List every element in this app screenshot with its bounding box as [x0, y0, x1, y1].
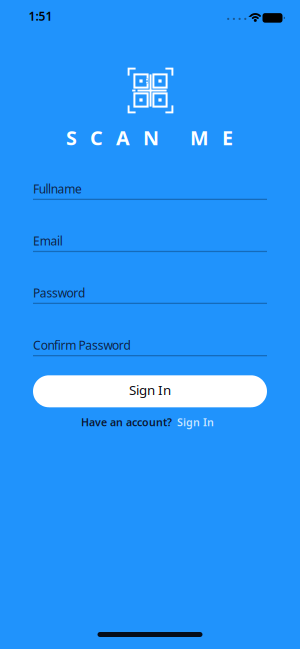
staticText: Have an account?	[81, 415, 172, 429]
button[interactable]: Fullname	[33, 181, 267, 200]
staticText: Confirm Password	[33, 337, 130, 353]
staticText: Sign In	[129, 381, 171, 399]
staticText: SCAN ME	[66, 124, 233, 151]
staticText: Email	[33, 233, 63, 249]
staticText: Sign In	[177, 415, 214, 429]
button[interactable]: Confirm Password	[33, 337, 267, 356]
staticText: 1:51	[28, 8, 52, 24]
staticText: Password	[33, 285, 85, 301]
button[interactable]: Password	[33, 285, 267, 304]
button[interactable]: Sign In	[33, 375, 267, 407]
staticText: Fullname	[33, 181, 82, 197]
button[interactable]: Sign In	[177, 415, 214, 429]
button[interactable]: Email	[33, 233, 267, 252]
